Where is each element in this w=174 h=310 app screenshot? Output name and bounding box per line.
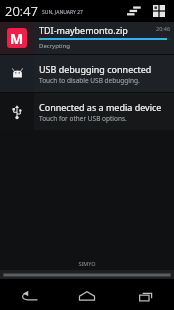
button[interactable]: Mobile data — [124, 1, 144, 21]
button[interactable]: Back — [0, 282, 58, 310]
button[interactable] — [0, 270, 174, 279]
button[interactable]: Connected as a media device — [0, 93, 174, 130]
staticText: Touch for other USB options. — [39, 114, 127, 123]
staticText: SUN, JANUARY 27 — [42, 9, 83, 16]
staticText: USB debugging connected — [39, 63, 152, 75]
button[interactable]: M — [0, 22, 174, 54]
staticText: Touch to disable USB debugging. — [39, 76, 140, 85]
staticText: Decrypting — [39, 42, 70, 50]
staticText: 20:46 — [156, 25, 171, 32]
staticText: TDI-maybemonto.zip — [39, 24, 128, 36]
button[interactable]: USB debugging connected — [0, 55, 174, 92]
button[interactable]: Quick settings — [150, 2, 168, 20]
button[interactable]: Recent apps — [116, 282, 174, 310]
staticText: M — [10, 29, 24, 48]
staticText: 20:47 — [5, 2, 38, 20]
button[interactable]: Home — [58, 282, 116, 310]
staticText: Connected as a media device — [39, 101, 162, 113]
staticText: SIMYO — [78, 260, 96, 267]
